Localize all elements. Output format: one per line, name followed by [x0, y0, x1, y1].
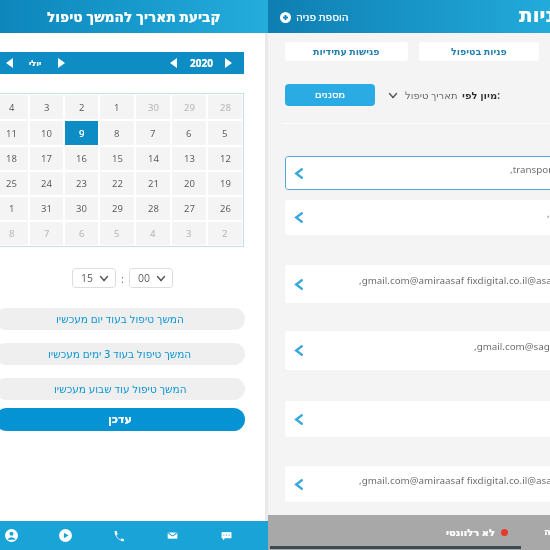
button[interactable]: 29: [100, 197, 134, 220]
button[interactable]: 1: [100, 95, 134, 119]
button[interactable]: 15: [100, 147, 134, 170]
button[interactable]: 23: [65, 172, 98, 195]
button[interactable]: 8: [0, 222, 28, 245]
button[interactable]: 11: [0, 121, 28, 145]
button[interactable]: ,transport: [285, 156, 550, 190]
staticText: 20: [184, 177, 195, 190]
button[interactable]: 31: [30, 197, 63, 220]
button[interactable]: 4: [136, 222, 170, 245]
button[interactable]: 8: [100, 121, 134, 145]
button[interactable]: 27: [172, 197, 206, 220]
button[interactable]: 16: [65, 147, 98, 170]
staticText: 13: [184, 152, 195, 165]
staticText: מיון לפי:: [462, 88, 501, 102]
button[interactable]: 21: [136, 172, 170, 195]
staticText: ה: [544, 526, 550, 538]
button[interactable]: Call: [91, 521, 145, 550]
staticText: 3: [44, 101, 50, 114]
staticText: 14: [148, 152, 159, 165]
button[interactable]: 26: [208, 197, 242, 220]
staticText: 15: [81, 271, 94, 285]
button[interactable]: 5: [208, 121, 242, 145]
staticText: 16: [76, 152, 87, 165]
button[interactable]: Mail: [145, 521, 199, 550]
button[interactable]: 29: [172, 95, 206, 119]
staticText: תאריך טיפול: [405, 88, 458, 102]
button[interactable]: 20: [172, 172, 206, 195]
button[interactable]: פגישות עתידיות: [285, 42, 408, 61]
button[interactable]: Previous month: [2, 52, 17, 74]
button[interactable]: 3: [172, 222, 206, 245]
staticText: המשך טיפול בעוד יום מעכשיו: [56, 312, 184, 326]
staticText: ,gmail.com@amiraasaf fixdigital.co.il@as…: [359, 474, 550, 487]
button[interactable]: 5: [100, 222, 134, 245]
button[interactable]: 7: [136, 121, 170, 145]
button[interactable]: 6: [65, 222, 98, 245]
button[interactable]: 18: [0, 147, 28, 170]
button[interactable]: Account: [0, 521, 38, 550]
button[interactable]: 4: [0, 95, 28, 119]
button[interactable]: המשך טיפול בעוד 3 ימים מעכשיו: [0, 343, 245, 365]
button[interactable]: 7: [30, 222, 63, 245]
button[interactable]: הוספת פניה: [280, 10, 349, 24]
button[interactable]: ,gmail.com@amiraasaf fixdigital.co.il@as…: [285, 265, 550, 303]
button[interactable]: 25: [0, 172, 28, 195]
button[interactable]: 2: [65, 95, 98, 119]
button[interactable]: Sort order: [387, 86, 501, 104]
button[interactable]: 30: [65, 197, 98, 220]
button[interactable]: ,gmail.com@amiraasaf fixdigital.co.il@as…: [285, 466, 550, 502]
button[interactable]: 6: [172, 121, 206, 145]
button[interactable]: עדכן: [0, 408, 245, 431]
button[interactable]: 12: [208, 147, 242, 170]
staticText: 23: [76, 177, 87, 190]
button[interactable]: פניות בטיפול: [419, 42, 539, 61]
button[interactable]: 22: [100, 172, 134, 195]
staticText: 6: [79, 227, 85, 240]
button[interactable]: 3: [30, 95, 63, 119]
button[interactable]: 10: [30, 121, 63, 145]
button[interactable]: 17: [30, 147, 63, 170]
button[interactable]: 28: [136, 197, 170, 220]
button[interactable]: 28: [208, 95, 242, 119]
staticText: 7: [150, 127, 156, 140]
staticText: 4: [9, 101, 15, 114]
button[interactable]: Next month: [54, 52, 69, 74]
staticText: 15: [112, 152, 123, 165]
staticText: 24: [41, 177, 52, 190]
button[interactable]: Chat: [199, 521, 253, 550]
button[interactable]: [285, 401, 550, 437]
staticText: ,gmail.com@amiraasaf fixdigital.co.il@as…: [359, 274, 550, 287]
button[interactable]: ,gmail.com@sagit: [285, 331, 550, 370]
button[interactable]: 24: [30, 172, 63, 195]
staticText: 5: [114, 227, 120, 240]
button[interactable]: Play: [38, 521, 92, 550]
staticText: המשך טיפול בעוד 3 ימים מעכשיו: [48, 347, 192, 361]
button[interactable]: 2: [208, 222, 242, 245]
button[interactable]: המשך טיפול עוד שבוע מעכשיו: [0, 378, 245, 400]
button[interactable]: 13: [172, 147, 206, 170]
staticText: :: [121, 271, 124, 286]
staticText: 8: [9, 227, 15, 240]
staticText: 30: [76, 202, 87, 215]
button[interactable]: 30: [136, 95, 170, 119]
staticText: ,gmail.com@sagit: [474, 340, 550, 353]
button[interactable]: מסננים: [285, 84, 375, 106]
staticText: פניות בטיפול: [451, 45, 507, 58]
button[interactable]: Next year: [221, 52, 236, 74]
button[interactable]: ,a: [285, 200, 550, 235]
button[interactable]: לא רלוונטי: [446, 524, 508, 540]
staticText: 29: [184, 101, 195, 114]
staticText: 6: [186, 127, 192, 140]
button[interactable]: 00: [129, 268, 173, 288]
button[interactable]: 1: [0, 197, 28, 220]
staticText: פניות: [519, 3, 550, 26]
staticText: הוספת פניה: [296, 10, 349, 24]
button[interactable]: 19: [208, 172, 242, 195]
button[interactable]: Previous year: [166, 52, 181, 74]
staticText: קביעת תאריך להמשך טיפול: [47, 7, 221, 26]
button[interactable]: 14: [136, 147, 170, 170]
button[interactable]: 15: [72, 268, 116, 288]
button[interactable]: המשך טיפול בעוד יום מעכשיו: [0, 308, 245, 330]
staticText: 9: [79, 127, 85, 140]
button[interactable]: 9: [65, 121, 98, 145]
